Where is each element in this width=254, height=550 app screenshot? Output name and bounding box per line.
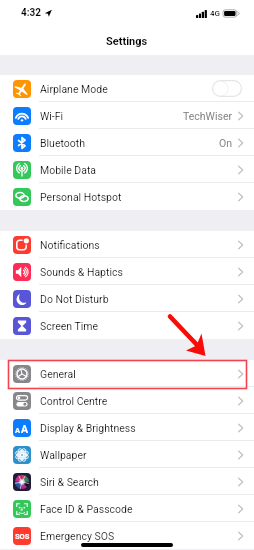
button[interactable]: Bluetooth [0,129,254,156]
staticText: Sounds & Haptics [40,266,123,278]
staticText: Screen Time [40,320,99,332]
staticText: Face ID & Passcode [40,503,133,515]
staticText: Mobile Data [40,164,97,176]
staticText: On [219,137,233,149]
button[interactable]: Face ID & Passcode [0,495,254,522]
staticText: 4G [210,9,220,18]
button[interactable]: Airplane Mode [0,75,254,102]
staticText: Siri & Search [40,476,99,488]
button[interactable]: General [0,360,254,387]
button[interactable]: Notifications [0,231,254,258]
staticText: Emergency SOS [40,530,115,542]
button[interactable]: Mobile Data [0,156,254,183]
button[interactable]: A [0,414,254,441]
staticText: SOS [15,532,30,541]
staticText: A [21,423,29,435]
button[interactable]: SOS [0,522,254,549]
button[interactable]: Do Not Disturb [0,285,254,312]
button[interactable]: Wi-Fi [0,102,254,129]
button[interactable]: Control Centre [0,387,254,414]
staticText: A [15,426,21,435]
staticText: General [40,368,76,380]
staticText: TechWiser [183,110,233,122]
button[interactable]: Siri & Search [0,468,254,495]
staticText: Personal Hotspot [40,191,122,203]
staticText: Bluetooth [40,137,85,149]
staticText: Display & Brightness [40,422,136,434]
staticText: Wi-Fi [40,110,64,122]
staticText: Control Centre [40,395,108,407]
button[interactable]: Sounds & Haptics [0,258,254,285]
staticText: Notifications [40,239,100,251]
staticText: Wallpaper [40,449,87,461]
staticText: Do Not Disturb [40,293,109,305]
button[interactable]: Personal Hotspot [0,183,254,210]
button[interactable]: Screen Time [0,312,254,339]
button[interactable]: Airplane Mode toggle [212,80,242,97]
staticText: 4:32 [21,7,42,19]
staticText: Settings [106,35,148,48]
button[interactable]: Wallpaper [0,441,254,468]
staticText: Airplane Mode [40,83,108,95]
